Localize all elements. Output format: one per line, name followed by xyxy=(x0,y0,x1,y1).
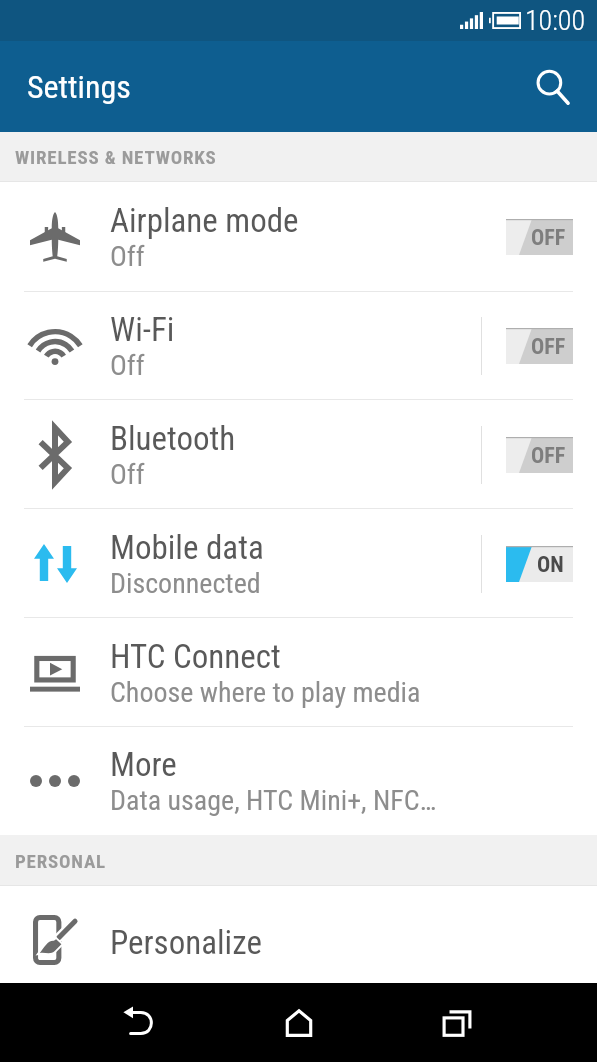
staticText: OFF xyxy=(531,334,566,360)
staticText: HTC Connect xyxy=(110,637,281,676)
button[interactable]: Switch off xyxy=(506,219,573,255)
button[interactable]: Recent apps xyxy=(418,983,496,1062)
button[interactable]: Switch off xyxy=(506,437,573,473)
button[interactable]: Search xyxy=(509,41,597,132)
button[interactable]: Wi-Fi xyxy=(0,291,597,400)
staticText: Settings xyxy=(27,68,131,106)
staticText: Data usage, HTC Mini+, NFC… xyxy=(110,784,437,817)
button[interactable]: Back xyxy=(100,983,178,1062)
button[interactable]: More xyxy=(0,726,597,835)
button[interactable]: Home xyxy=(260,983,338,1062)
button[interactable]: HTC Connect xyxy=(0,618,597,727)
staticText: Choose where to play media xyxy=(110,676,421,709)
staticText: Personalize xyxy=(110,923,262,962)
staticText: Disconnected xyxy=(110,567,261,600)
staticText: PERSONAL xyxy=(15,850,106,872)
button[interactable]: Personalize xyxy=(0,885,597,994)
button[interactable]: Bluetooth xyxy=(0,400,597,509)
button[interactable]: Mobile data xyxy=(0,509,597,618)
button[interactable]: Switch on xyxy=(506,546,573,582)
staticText: Mobile data xyxy=(110,528,264,567)
staticText: OFF xyxy=(531,443,566,469)
staticText: WIRELESS & NETWORKS xyxy=(15,146,217,168)
staticText: 10:00 xyxy=(525,4,586,37)
staticText: Off xyxy=(110,458,145,491)
staticText: Airplane mode xyxy=(110,201,299,240)
button[interactable]: Switch off xyxy=(506,328,573,364)
staticText: Bluetooth xyxy=(110,419,236,458)
staticText: Off xyxy=(110,240,145,273)
staticText: OFF xyxy=(531,225,566,251)
staticText: ON xyxy=(537,552,564,578)
staticText: Wi-Fi xyxy=(110,310,175,349)
staticText: Off xyxy=(110,349,145,382)
staticText: More xyxy=(110,745,177,784)
button[interactable]: Airplane mode xyxy=(0,182,597,292)
